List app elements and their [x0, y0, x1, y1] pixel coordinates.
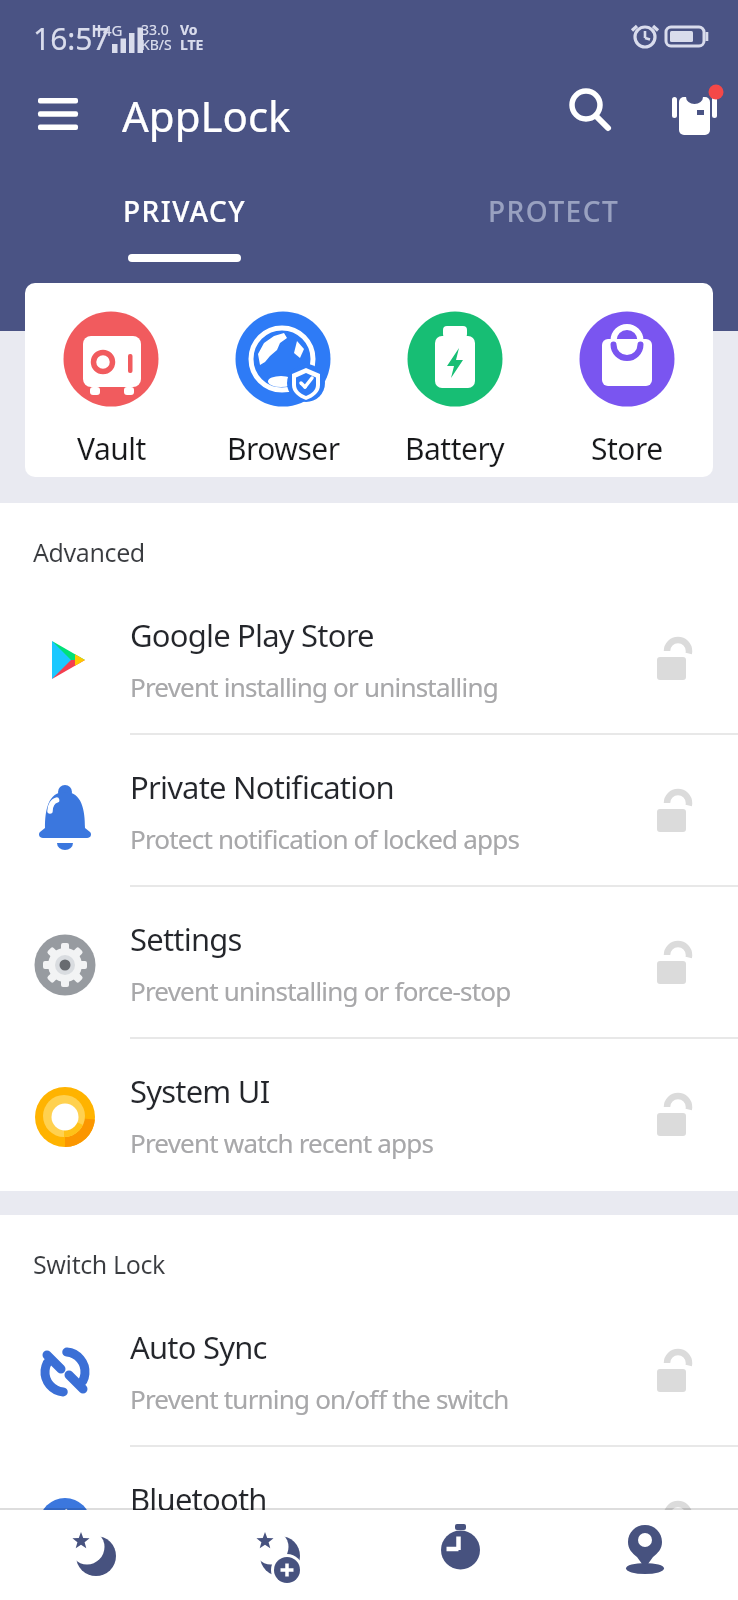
staticText: Google Play Store	[130, 614, 374, 656]
button[interactable]: Vault	[25, 310, 197, 477]
button[interactable]: System UI	[0, 1039, 738, 1191]
button[interactable]: Store	[541, 310, 713, 477]
button[interactable]: Bluetooth	[0, 1447, 738, 1599]
staticText: Bluetooth	[130, 1478, 267, 1520]
staticText: Prevent turning on/off the switch	[130, 1381, 509, 1416]
button[interactable]	[24, 81, 92, 149]
staticText: Prevent uninstalling or force-stop	[130, 973, 511, 1008]
staticText: Store	[591, 428, 663, 469]
button[interactable]	[553, 1510, 738, 1600]
staticText: AppLock	[122, 87, 291, 144]
staticText: Prevent turning on/off the switch	[130, 1533, 509, 1568]
button[interactable]: Private Notification	[0, 735, 738, 887]
button[interactable]	[184, 1510, 368, 1600]
staticText: 33.0 KB/S	[141, 20, 172, 54]
staticText: Auto Sync	[130, 1326, 267, 1368]
button[interactable]: PRIVACY	[0, 155, 369, 283]
staticText: Browser	[227, 428, 340, 469]
button[interactable]: Google Play Store	[0, 583, 738, 735]
staticText: Switch Lock	[33, 1247, 165, 1281]
button[interactable]: Auto Sync	[0, 1295, 738, 1447]
staticText: PRIVACY	[123, 192, 247, 230]
staticText: System UI	[130, 1070, 270, 1112]
staticText: Battery	[405, 428, 505, 469]
staticText: Vault	[77, 428, 146, 469]
staticText: Prevent installing or uninstalling	[130, 669, 498, 704]
button[interactable]	[0, 1510, 184, 1600]
button[interactable]: Settings	[0, 887, 738, 1039]
button[interactable]	[556, 76, 624, 144]
button[interactable]: Browser	[197, 310, 369, 477]
staticText: Private Notification	[130, 766, 394, 808]
button[interactable]	[658, 76, 726, 144]
staticText: Advanced	[33, 535, 145, 569]
staticText: PROTECT	[488, 192, 620, 230]
button[interactable]	[368, 1510, 553, 1600]
staticText: 16:57	[33, 18, 110, 59]
staticText: Prevent watch recent apps	[130, 1125, 434, 1160]
button[interactable]: Battery	[369, 310, 541, 477]
staticText: Protect notification of locked apps	[130, 821, 520, 856]
staticText: Vo LTE	[180, 20, 204, 54]
staticText: 4G	[103, 20, 123, 40]
button[interactable]: PROTECT	[369, 155, 738, 283]
staticText: Settings	[130, 918, 242, 960]
